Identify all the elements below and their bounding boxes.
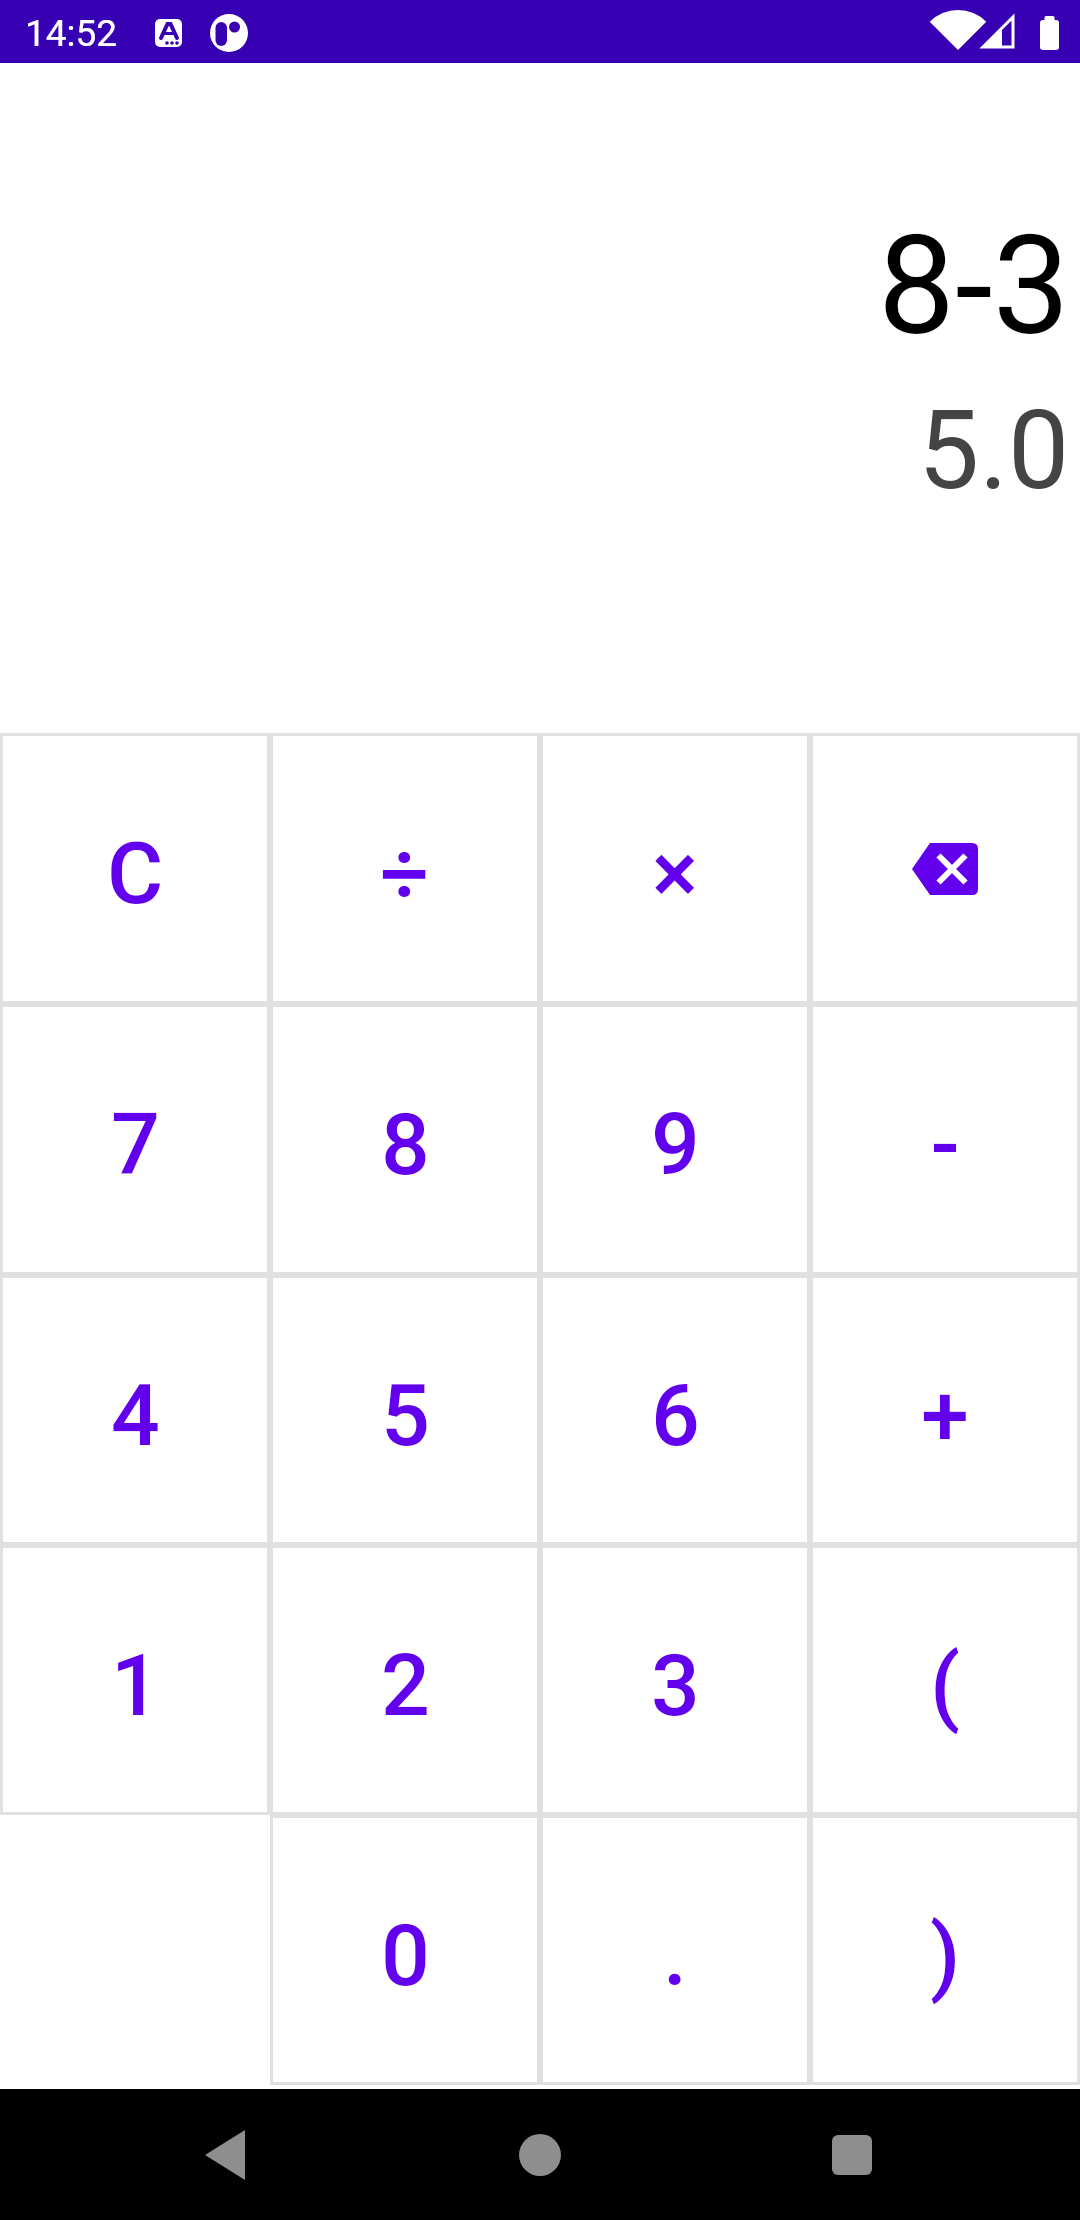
staticText: ÷	[380, 823, 430, 924]
staticText: -	[931, 1094, 960, 1195]
button[interactable]: C	[0, 733, 270, 1004]
button[interactable]: 1	[0, 1545, 270, 1815]
staticText: +	[921, 1365, 969, 1466]
button[interactable]	[810, 733, 1080, 1004]
button[interactable]: 4	[0, 1275, 270, 1545]
button[interactable]	[510, 2125, 570, 2185]
button[interactable]: 5	[270, 1275, 540, 1545]
staticText: 14:52	[25, 12, 118, 55]
staticText: 8	[381, 1094, 430, 1195]
staticText: .	[663, 1905, 688, 2006]
button[interactable]: 0	[270, 1815, 540, 2085]
button[interactable]: ×	[540, 733, 810, 1004]
staticText: C	[107, 823, 164, 924]
button[interactable]	[195, 2125, 255, 2185]
staticText: 8-3	[878, 206, 1070, 367]
staticText: 0	[381, 1905, 430, 2006]
button[interactable]: -	[810, 1004, 1080, 1275]
staticText: (	[930, 1635, 961, 1736]
button[interactable]: 2	[270, 1545, 540, 1815]
button[interactable]: )	[810, 1815, 1080, 2085]
button[interactable]: 9	[540, 1004, 810, 1275]
button[interactable]: (	[810, 1545, 1080, 1815]
button[interactable]: 6	[540, 1275, 810, 1545]
staticText: 1	[111, 1635, 160, 1736]
staticText: 5	[381, 1365, 430, 1466]
button[interactable]: 8	[270, 1004, 540, 1275]
staticText: 5.0	[918, 387, 1070, 515]
staticText: 6	[651, 1365, 700, 1466]
staticText: ×	[652, 823, 698, 924]
staticText: 2	[381, 1635, 430, 1736]
button[interactable]: 7	[0, 1004, 270, 1275]
button[interactable]: +	[810, 1275, 1080, 1545]
staticText: )	[930, 1905, 961, 2006]
staticText: 3	[651, 1635, 700, 1736]
button[interactable]: .	[540, 1815, 810, 2085]
staticText: 4	[111, 1365, 160, 1466]
button[interactable]: ÷	[270, 733, 540, 1004]
staticText: 7	[111, 1094, 160, 1195]
button[interactable]: 3	[540, 1545, 810, 1815]
staticText: 9	[651, 1094, 700, 1195]
button[interactable]	[822, 2125, 882, 2185]
